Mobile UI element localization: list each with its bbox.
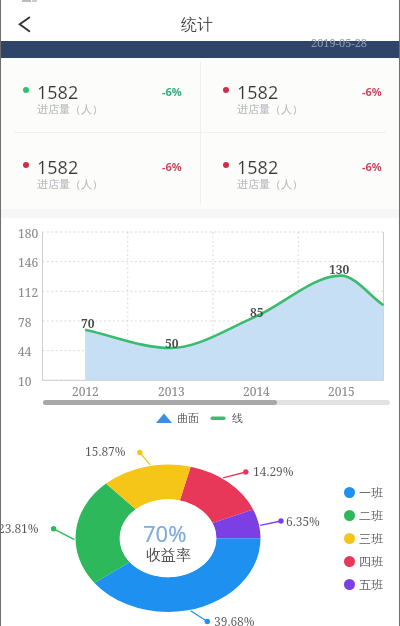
staticText: 2015 <box>328 383 355 399</box>
staticText: 2012 <box>72 383 99 399</box>
staticText: 14.29% <box>253 463 294 479</box>
staticText: 一班 <box>359 485 383 500</box>
staticText: 线 <box>232 411 243 425</box>
staticText: 2013 <box>158 383 185 399</box>
button[interactable]: 二班 <box>344 505 383 525</box>
staticText: 180 <box>18 225 39 241</box>
button[interactable]: Back <box>7 7 42 42</box>
button[interactable]: 1582 <box>200 133 400 208</box>
staticText: 70% <box>143 518 187 548</box>
staticText: 二班 <box>359 508 383 523</box>
staticText: 146 <box>18 254 39 270</box>
staticText: 23.81% <box>0 520 39 536</box>
button[interactable]: 1582 <box>200 58 400 133</box>
staticText: 50 <box>165 335 179 351</box>
staticText: 收益率 <box>146 546 191 565</box>
staticText: 进店量（人） <box>37 177 103 191</box>
button[interactable]: 一班 <box>344 482 383 502</box>
staticText: 10 <box>18 373 32 389</box>
button[interactable]: 三班 <box>344 528 383 548</box>
staticText: 112 <box>18 284 39 300</box>
staticText: 15.87% <box>85 443 126 459</box>
staticText: -6% <box>362 84 382 99</box>
staticText: 130 <box>329 261 350 277</box>
staticText: -6% <box>162 159 182 174</box>
staticText: 39.68% <box>214 613 255 626</box>
staticText: 四班 <box>359 554 383 569</box>
staticText: 进店量（人） <box>237 177 303 191</box>
staticText: -6% <box>362 159 382 174</box>
staticText: 2019-05-28 <box>311 35 368 50</box>
staticText: 1582 <box>237 80 279 105</box>
staticText: 1582 <box>37 80 79 105</box>
staticText: 进店量（人） <box>237 102 303 116</box>
staticText: 曲面 <box>177 411 199 425</box>
staticText: 进店量（人） <box>37 102 103 116</box>
staticText: 统计 <box>181 15 213 35</box>
staticText: 44 <box>18 343 32 359</box>
staticText: -6% <box>162 84 182 99</box>
staticText: 78 <box>18 314 32 330</box>
button[interactable]: 五班 <box>344 574 383 594</box>
staticText: 85 <box>250 304 264 320</box>
staticText: 五班 <box>359 577 383 592</box>
staticText: 1582 <box>237 155 279 180</box>
button[interactable]: 1582 <box>0 58 200 133</box>
staticText: 6.35% <box>286 513 320 529</box>
button[interactable]: 1582 <box>0 133 200 208</box>
staticText: 1582 <box>37 155 79 180</box>
staticText: 2014 <box>243 383 270 399</box>
staticText: 70 <box>81 315 95 331</box>
button[interactable]: 四班 <box>344 551 383 571</box>
staticText: 三班 <box>359 531 383 546</box>
